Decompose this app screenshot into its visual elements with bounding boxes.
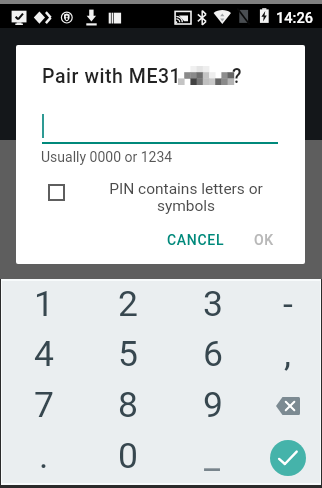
button[interactable]: Backspace [255,381,320,432]
button[interactable]: 1 [2,281,86,331]
button[interactable]: 5 [86,331,170,381]
button[interactable]: 3 [170,281,255,331]
button[interactable]: CANCEL [159,225,233,255]
button[interactable]: Enter [255,432,320,483]
staticText: 4 [34,333,54,375]
staticText: 7 [34,384,54,426]
staticText: - [283,283,293,325]
staticText: 9 [203,384,223,426]
button[interactable]: , [255,331,320,381]
button[interactable]: . [2,432,86,483]
button[interactable]: PIN contains letters or symbols [48,184,65,201]
button[interactable]: _ [170,432,255,483]
button[interactable]: 7 [2,381,86,432]
button[interactable]: Enter [270,440,306,476]
staticText: 2 [118,283,138,325]
staticText: Usually 0000 or 1234 [41,149,173,165]
button[interactable]: - [255,281,320,331]
button[interactable]: 0 [86,432,170,483]
staticText: _ [204,435,221,477]
staticText: 1 [34,283,54,325]
button[interactable]: OK [246,225,282,255]
staticText: 6 [203,333,223,375]
other: Backspace [276,397,300,415]
staticText: , [284,333,291,375]
staticText: 0 [118,435,138,477]
staticText: 5 [118,333,138,375]
staticText: 3 [203,283,223,325]
button[interactable]: 4 [2,331,86,381]
button[interactable]: 8 [86,381,170,432]
staticText: PIN contains letters or symbols [91,180,281,215]
button[interactable]: 6 [170,331,255,381]
staticText: ? [232,65,242,88]
staticText: 14:26 [276,9,314,26]
staticText: Pair with ME31 [42,65,182,88]
button[interactable]: 2 [86,281,170,331]
staticText: . [39,435,49,477]
staticText: 8 [118,384,138,426]
button[interactable]: 9 [170,381,255,432]
